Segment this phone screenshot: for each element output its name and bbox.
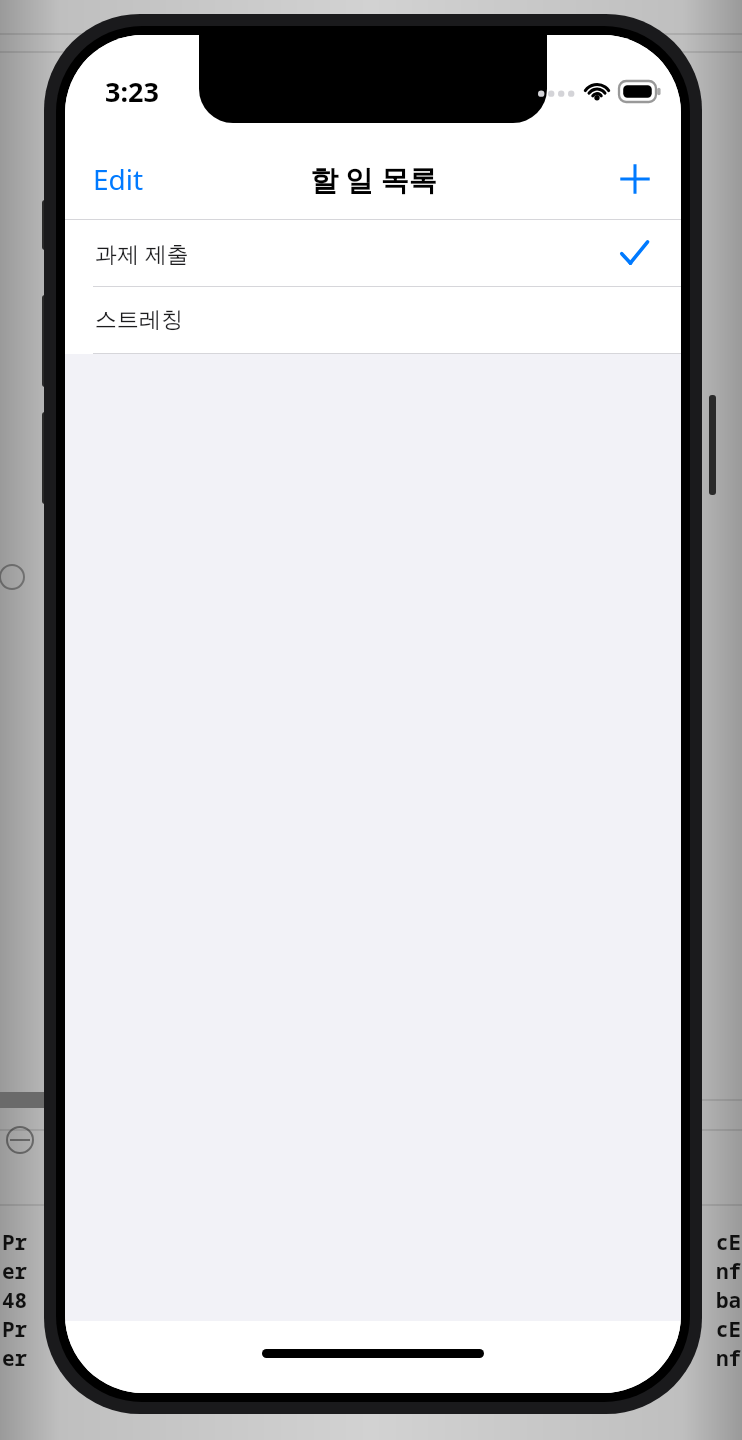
staticText: 할 일 목록 [310, 160, 437, 198]
staticText: Pr [2, 1228, 28, 1257]
staticText: ba [716, 1286, 742, 1315]
staticText: cE [716, 1228, 742, 1257]
staticText: 48 [2, 1286, 28, 1315]
staticText: nf [716, 1257, 742, 1286]
button[interactable]: Add task [611, 155, 659, 203]
staticText: 스트레칭 [95, 306, 183, 334]
staticText: 3:23 [105, 73, 159, 110]
staticText: er [2, 1257, 28, 1286]
button[interactable]: 과제 제출 [65, 220, 681, 286]
staticText: nf [716, 1344, 742, 1373]
staticText: er [2, 1344, 28, 1373]
staticText: 과제 제출 [95, 238, 189, 268]
staticText: Pr [2, 1315, 28, 1344]
button[interactable]: Edit [79, 152, 158, 206]
button[interactable]: 스트레칭 [65, 287, 681, 353]
staticText: Edit [93, 160, 144, 198]
staticText: cE [716, 1315, 742, 1344]
